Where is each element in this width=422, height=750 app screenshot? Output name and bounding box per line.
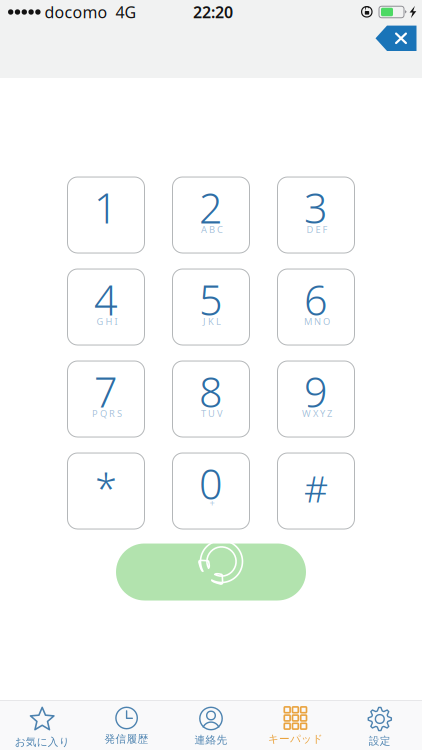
button[interactable]: 9 [277,361,354,437]
staticText: お気に入り [15,735,70,749]
staticText: J K L [203,315,221,328]
staticText: 発信履歴 [105,732,149,746]
staticText: 6 [304,272,328,327]
button[interactable]: Delete [375,26,416,51]
staticText: D E F [306,223,327,236]
staticText: 連絡先 [194,733,227,747]
staticText: 4G [116,1,137,23]
button[interactable]: * [67,453,144,529]
staticText: # [304,463,328,513]
button[interactable]: 2 [172,177,249,253]
staticText: W X Y Z [302,407,332,420]
staticText: A B C [201,223,223,236]
button[interactable]: 発信履歴 [84,700,169,750]
staticText: M N O [304,315,330,328]
button[interactable]: # [277,453,354,529]
staticText: + [209,497,214,509]
button[interactable]: 3 [277,177,354,253]
staticText: キーパッド [268,732,323,746]
staticText: P Q R S [92,407,122,420]
button[interactable]: 0 [172,453,249,529]
staticText: 22:20 [193,1,233,23]
staticText: 設定 [369,734,391,748]
button[interactable]: 6 [277,269,354,345]
button[interactable]: キーパッド [253,700,338,750]
staticText: G H I [96,315,117,328]
staticText: 0 [199,456,223,511]
button[interactable]: 連絡先 [169,700,253,750]
staticText: 9 [304,364,328,419]
button[interactable]: お気に入り [0,700,84,750]
staticText: 1 [94,180,118,235]
button[interactable]: 設定 [338,700,422,750]
staticText: 5 [199,272,223,327]
staticText: 2 [199,180,223,235]
staticText: docomo [45,1,108,23]
staticText: 3 [304,180,328,235]
staticText: 8 [199,364,223,419]
staticText: * [95,461,117,514]
staticText: 4 [94,272,118,327]
button[interactable]: 1 [67,177,144,253]
button[interactable]: 7 [67,361,144,437]
button[interactable]: Call [116,543,306,600]
button[interactable]: 4 [67,269,144,345]
staticText: 7 [94,364,118,419]
button[interactable]: 8 [172,361,249,437]
staticText: T U V [201,407,223,420]
button[interactable]: 5 [172,269,249,345]
